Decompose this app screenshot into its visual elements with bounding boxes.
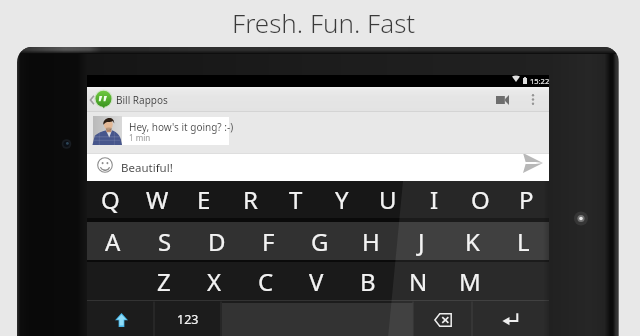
button[interactable]: E xyxy=(181,181,227,218)
staticText: S xyxy=(158,225,172,258)
staticText: A xyxy=(105,225,121,258)
button[interactable]: P xyxy=(503,181,549,218)
button[interactable]: Video call xyxy=(496,96,509,104)
button[interactable]: Space xyxy=(222,303,413,336)
button[interactable]: X xyxy=(189,262,240,300)
button[interactable]: C xyxy=(240,262,291,300)
staticText: V xyxy=(309,265,324,298)
staticText: X xyxy=(207,265,222,298)
button[interactable]: R xyxy=(227,181,273,218)
staticText: J xyxy=(418,225,425,258)
staticText: Y xyxy=(335,183,349,216)
button[interactable]: T xyxy=(273,181,319,218)
button[interactable]: I xyxy=(411,181,457,218)
staticText: Fresh. Fun. Fast xyxy=(232,5,416,40)
button[interactable]: B xyxy=(342,262,393,300)
staticText: M xyxy=(459,265,481,298)
staticText: 15:22 xyxy=(530,76,550,86)
staticText: G xyxy=(311,225,329,258)
button[interactable]: W xyxy=(134,181,181,218)
staticText: W xyxy=(146,183,169,216)
staticText: 1 min xyxy=(129,132,151,143)
staticText: Hey, how's it going? :-) xyxy=(129,120,234,134)
button[interactable]: 123 xyxy=(154,311,221,328)
button[interactable]: F xyxy=(243,222,294,260)
button[interactable]: Backspace xyxy=(413,300,472,336)
button[interactable]: L xyxy=(498,222,549,260)
button[interactable]: Hey, how's it going? :-) xyxy=(122,117,229,145)
button[interactable]: More options xyxy=(530,94,536,105)
staticText: K xyxy=(465,225,480,258)
button[interactable]: V xyxy=(291,262,342,300)
staticText: F xyxy=(262,225,275,258)
button[interactable]: O xyxy=(457,181,503,218)
staticText: L xyxy=(517,225,530,258)
staticText: R xyxy=(243,183,258,216)
button[interactable]: D xyxy=(191,222,243,260)
button[interactable]: Q xyxy=(87,181,134,218)
button[interactable]: Send xyxy=(523,153,543,173)
staticText: O xyxy=(471,183,490,216)
staticText: N xyxy=(409,265,428,298)
staticText: Bill Rappos xyxy=(116,93,168,107)
button[interactable]: Z xyxy=(138,262,189,300)
button[interactable]: H xyxy=(345,222,396,260)
staticText: C xyxy=(258,265,274,298)
staticText: P xyxy=(519,183,534,216)
button[interactable]: U xyxy=(365,181,411,218)
staticText: I xyxy=(430,183,439,216)
button[interactable]: J xyxy=(396,222,447,260)
staticText: Beautiful! xyxy=(121,160,173,176)
staticText: B xyxy=(360,265,376,298)
button[interactable]: M xyxy=(444,262,495,300)
staticText: Z xyxy=(157,265,171,298)
staticText: Q xyxy=(101,183,120,216)
staticText: T xyxy=(289,183,303,216)
button[interactable]: K xyxy=(447,222,498,260)
button[interactable]: Enter xyxy=(472,300,549,336)
staticText: U xyxy=(379,183,397,216)
button[interactable]: Back xyxy=(88,93,96,107)
staticText: E xyxy=(197,183,211,216)
staticText: 123 xyxy=(177,311,199,328)
button[interactable]: N xyxy=(393,262,444,300)
button[interactable]: A xyxy=(87,222,139,260)
button[interactable]: Y xyxy=(319,181,365,218)
staticText: H xyxy=(362,225,380,258)
button[interactable]: Shift xyxy=(87,300,154,336)
button[interactable]: S xyxy=(139,222,191,260)
button[interactable]: G xyxy=(294,222,345,260)
staticText: D xyxy=(208,225,226,258)
button[interactable]: Emoji xyxy=(97,157,113,173)
